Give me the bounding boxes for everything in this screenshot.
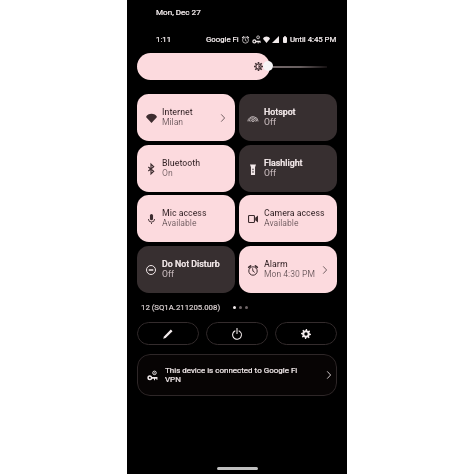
button[interactable]: Alarm	[239, 246, 337, 293]
staticText: Off	[162, 269, 174, 279]
button[interactable]: Hotspot	[239, 94, 337, 141]
staticText: Available	[264, 218, 299, 228]
button[interactable]: Flashlight	[239, 145, 337, 192]
staticText: Flashlight	[264, 158, 303, 168]
button[interactable]: This device is connected to Google Fi VP…	[137, 354, 337, 396]
button[interactable]: Camera access	[239, 195, 337, 242]
button[interactable]: Mic access	[137, 195, 235, 242]
staticText: Mic access	[162, 208, 207, 218]
staticText: Google Fi	[206, 35, 239, 44]
staticText: Available	[162, 218, 197, 228]
button[interactable]: Do Not Disturb	[137, 246, 235, 293]
staticText: Alarm	[264, 259, 288, 269]
staticText: Off	[264, 168, 276, 178]
staticText: Off	[264, 117, 276, 127]
staticText: Milan	[162, 117, 184, 127]
staticText: On	[162, 168, 173, 178]
staticText: Mon 4:30 PM	[264, 269, 315, 279]
staticText: This device is connected to Google Fi VP…	[165, 366, 305, 384]
button[interactable]: Edit	[137, 322, 199, 345]
staticText: Until 4:45 PM	[290, 35, 337, 44]
button[interactable]: Brightness	[137, 53, 270, 80]
staticText: Camera access	[264, 208, 325, 218]
staticText: Internet	[162, 107, 193, 117]
staticText: Do Not Disturb	[162, 259, 220, 269]
staticText: Bluetooth	[162, 158, 201, 168]
button[interactable]: Bluetooth	[137, 145, 235, 192]
staticText: Hotspot	[264, 107, 296, 117]
button[interactable]: Settings	[275, 322, 337, 345]
staticText: 1:11	[156, 35, 172, 44]
button[interactable]: Internet	[137, 94, 235, 141]
button[interactable]: Power	[206, 322, 268, 345]
staticText: Mon, Dec 27	[156, 7, 201, 16]
staticText: 12 (SQ1A.211205.008)	[141, 303, 221, 312]
